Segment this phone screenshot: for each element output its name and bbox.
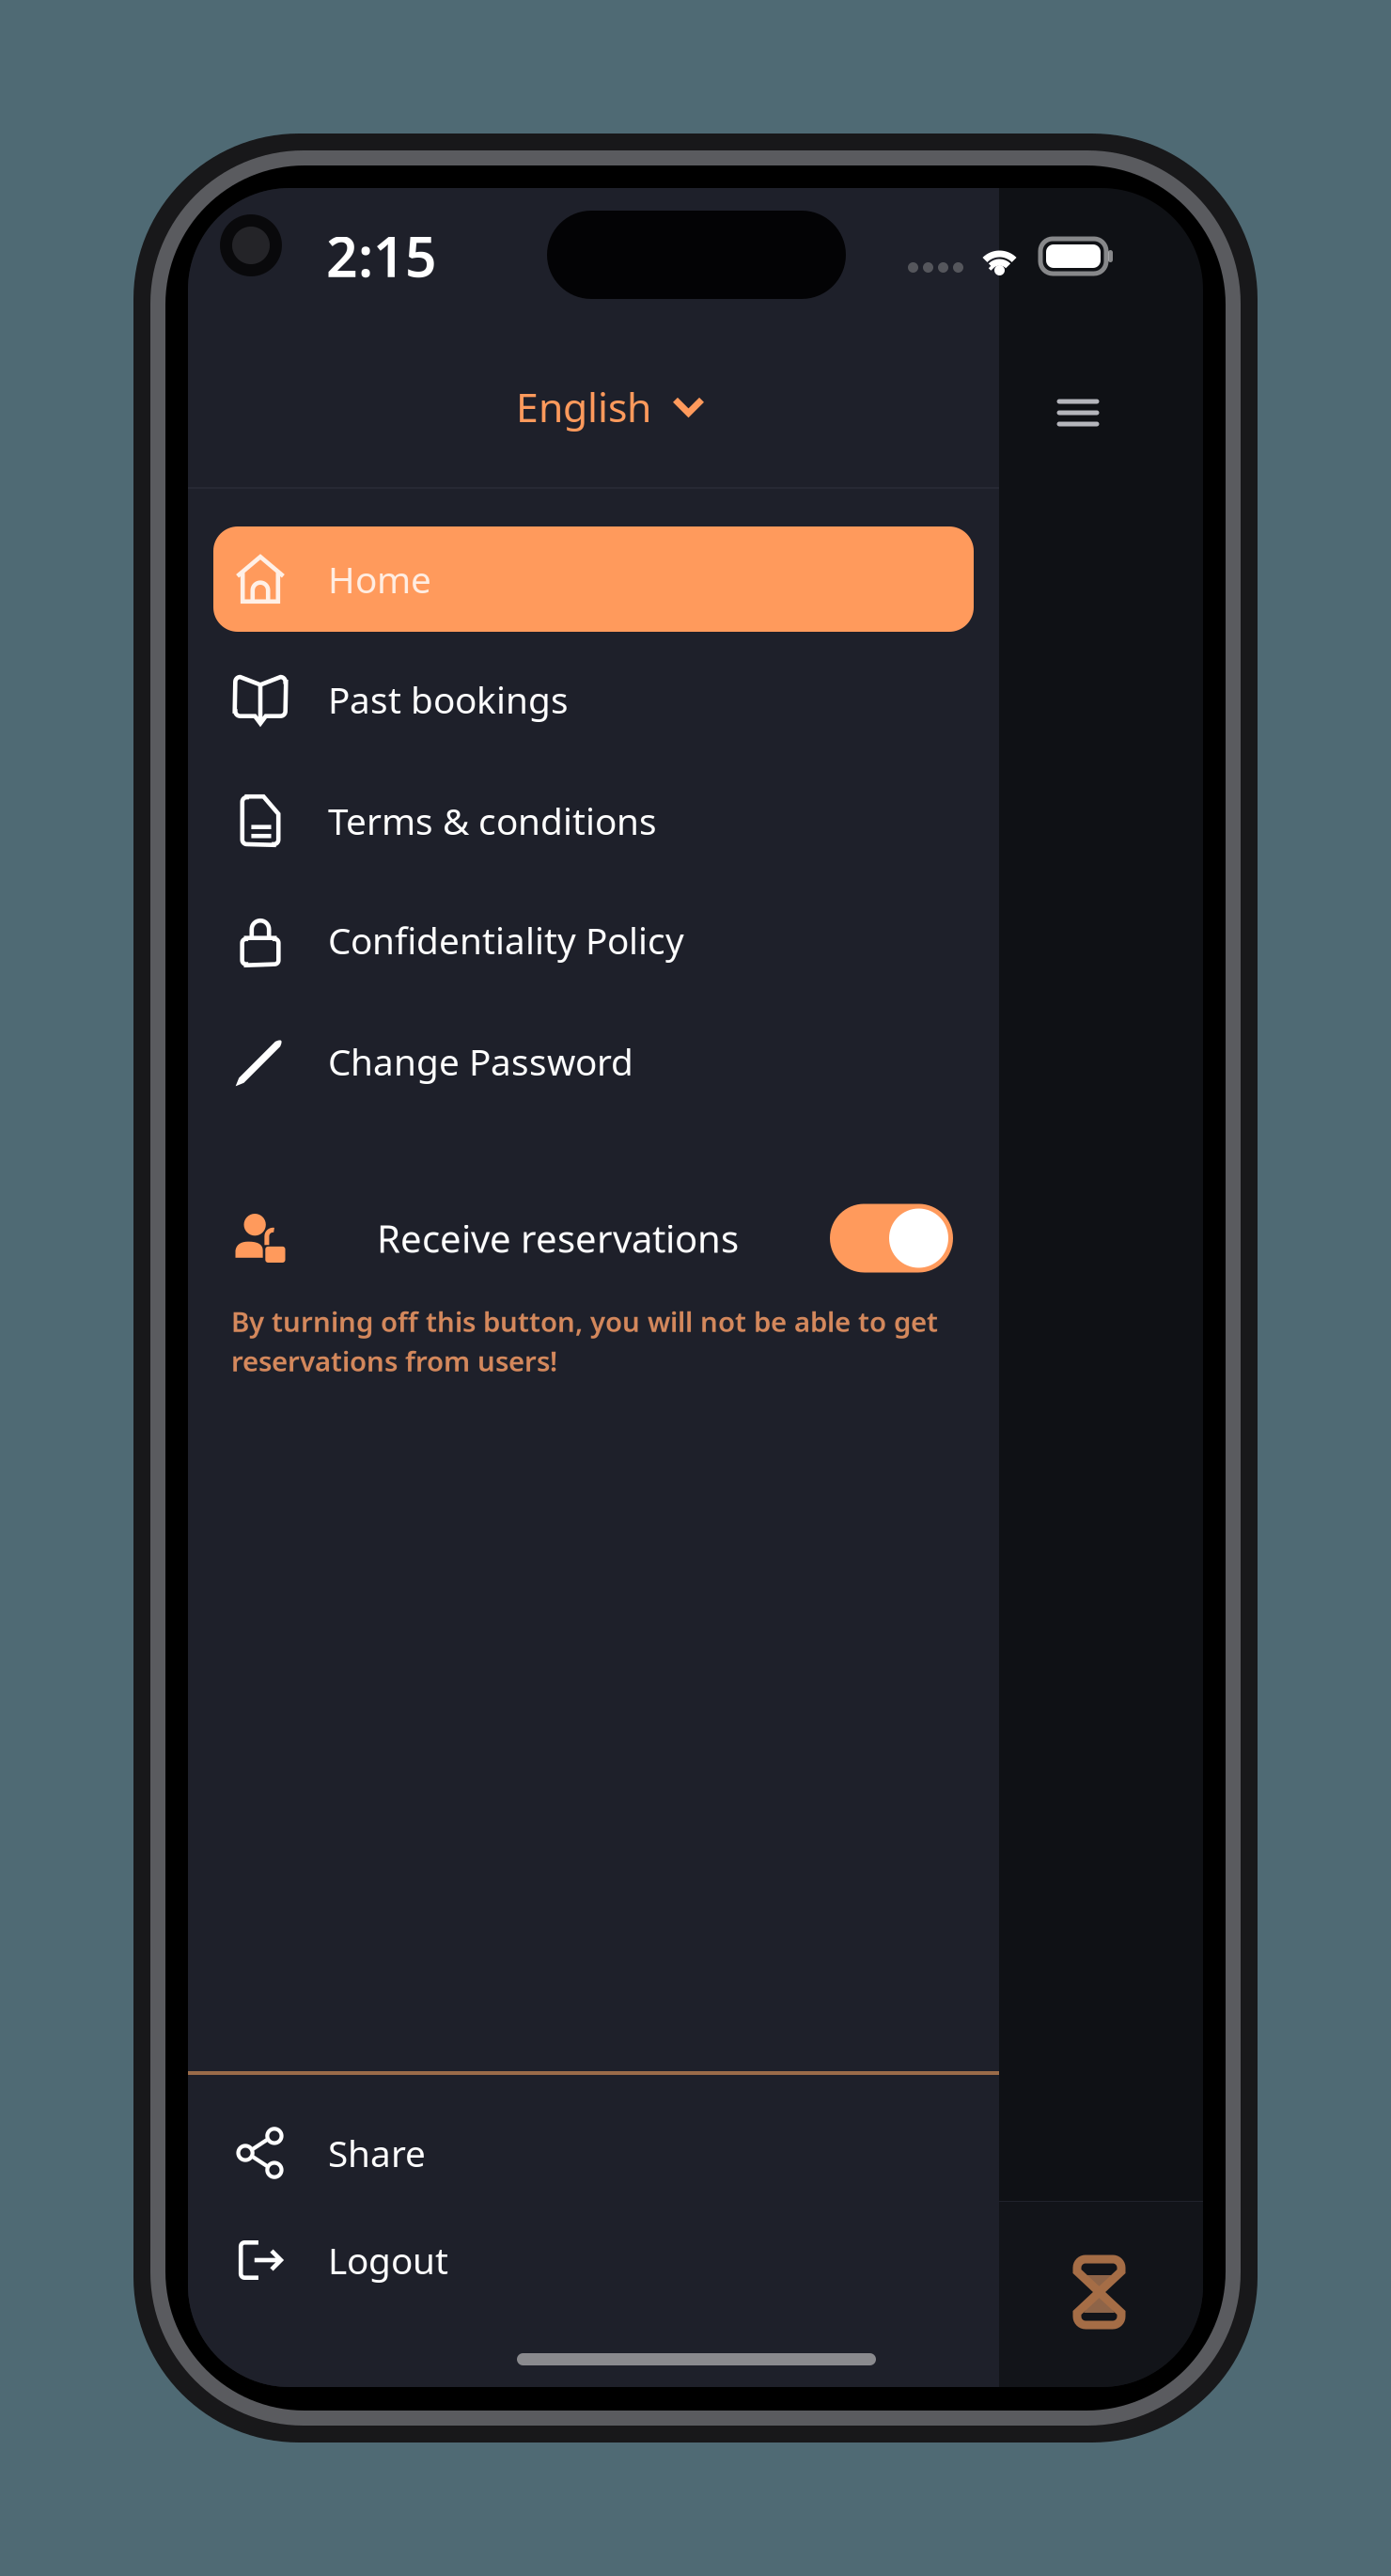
staticText: reservations from users! [231, 1343, 557, 1379]
staticText: Terms & conditions [328, 797, 657, 845]
staticText: Past bookings [328, 675, 569, 724]
staticText: Receive reservations [377, 1213, 739, 1263]
button[interactable]: Past bookings [213, 647, 974, 752]
staticText: Change Password [328, 1037, 633, 1085]
button[interactable]: English [492, 355, 729, 458]
staticText: 2:15 [326, 219, 437, 292]
button[interactable]: Confidentiality Policy [213, 887, 974, 993]
staticText: By turning off this button, you will not… [231, 1303, 938, 1340]
staticText: Home [328, 555, 431, 603]
button[interactable]: Share [213, 2100, 974, 2206]
staticText: Logout [328, 2236, 448, 2284]
staticText: Share [328, 2129, 426, 2177]
button[interactable]: Receive reservations [213, 1189, 974, 1287]
button[interactable]: Terms & conditions [213, 768, 974, 873]
staticText: English [516, 380, 651, 433]
button[interactable]: Home [213, 526, 974, 632]
button[interactable]: Menu [1036, 370, 1120, 455]
button[interactable]: Change Password [213, 1009, 974, 1114]
button[interactable]: Logout [213, 2207, 974, 2313]
staticText: Confidentiality Policy [328, 916, 684, 964]
